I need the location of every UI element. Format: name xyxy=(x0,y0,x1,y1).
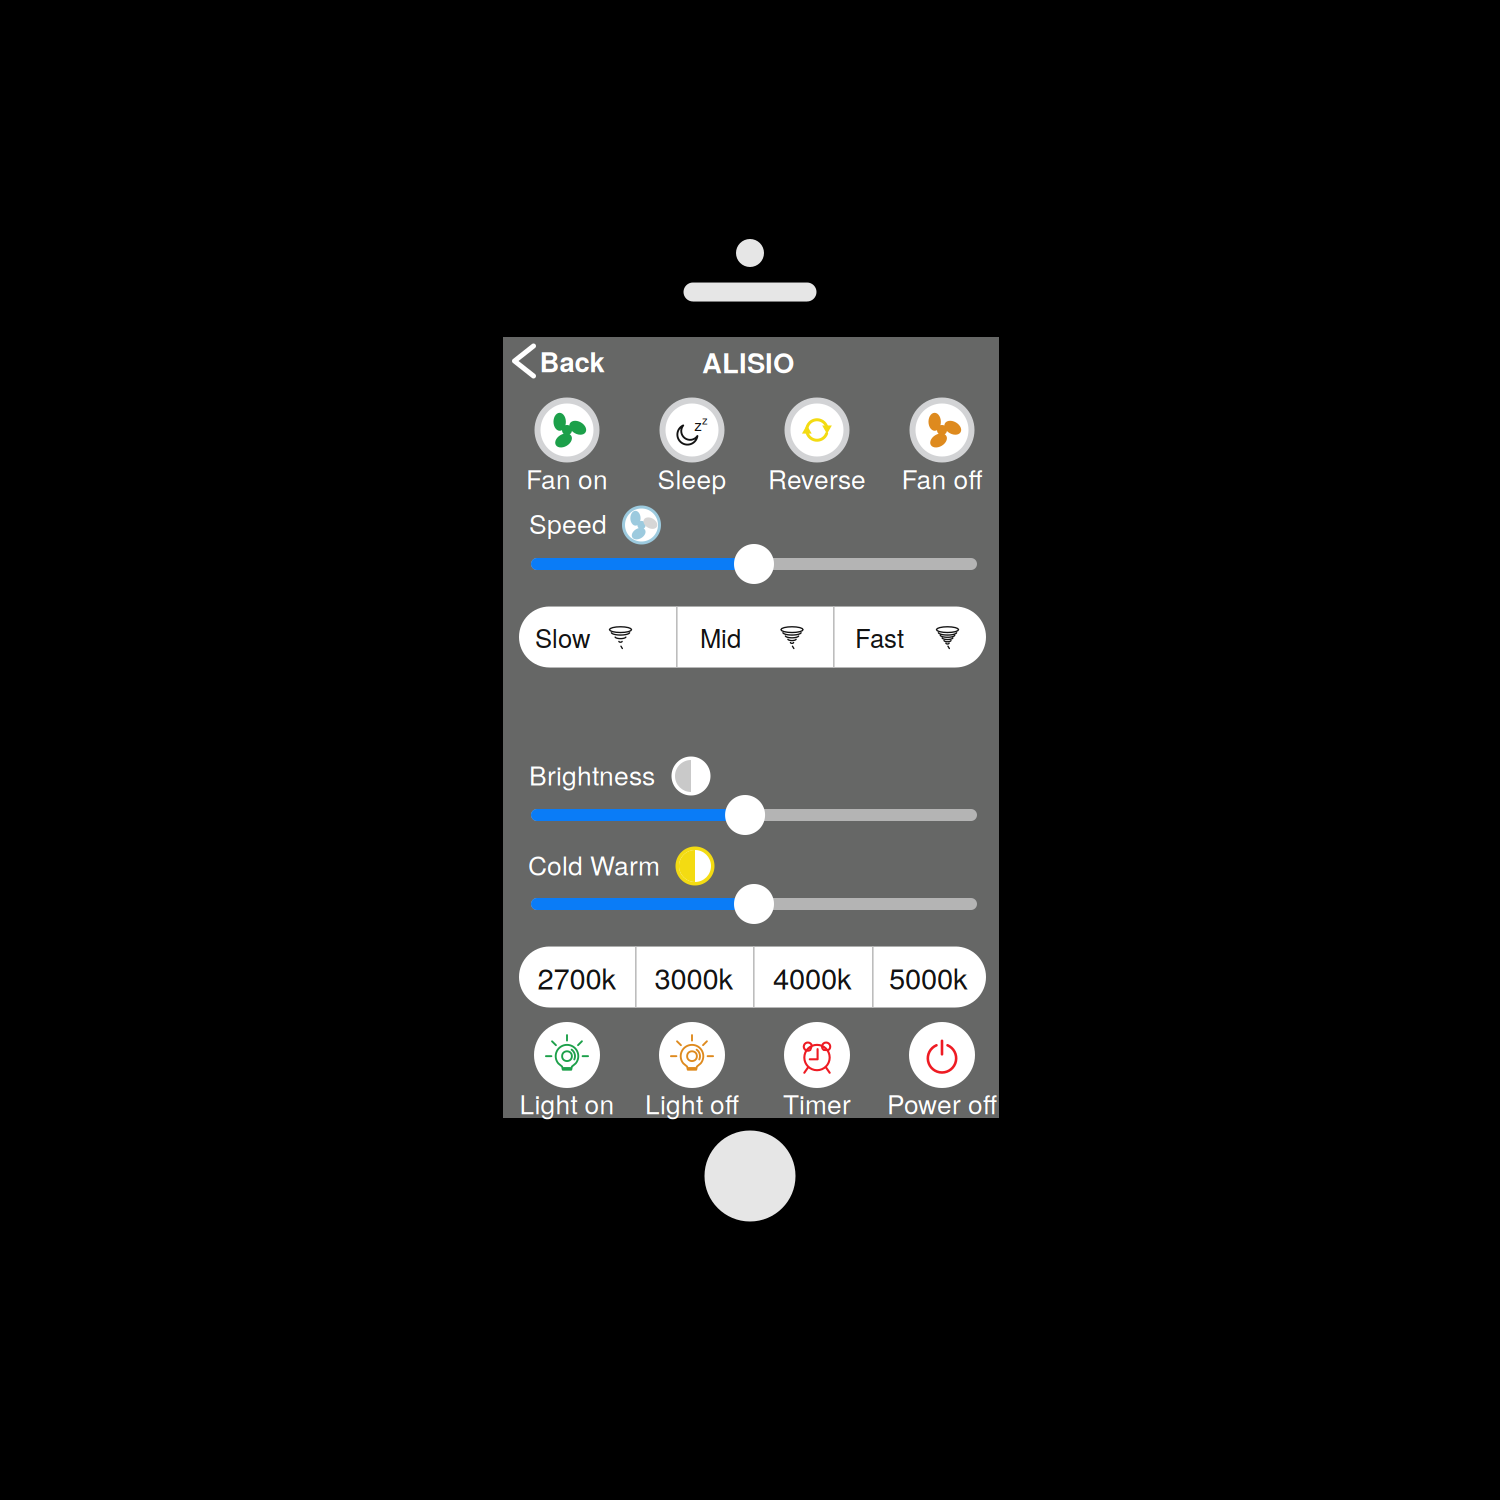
staticText: z xyxy=(702,411,708,428)
staticText: Brightness xyxy=(529,755,655,793)
button[interactable]: Back xyxy=(511,341,604,381)
staticText: Slow xyxy=(535,619,590,655)
staticText: 4000k xyxy=(773,956,852,998)
staticText: Light off xyxy=(645,1084,739,1122)
staticText: Fan on xyxy=(526,459,608,497)
button[interactable]: Timer xyxy=(737,1022,897,1118)
button[interactable]: Light off xyxy=(612,1022,772,1118)
staticText: Reverse xyxy=(768,459,866,497)
button[interactable]: Fan on xyxy=(487,397,647,493)
button[interactable]: Mid xyxy=(676,606,833,667)
button[interactable]: Fast xyxy=(833,606,985,667)
staticText: 2700k xyxy=(537,956,616,998)
button[interactable]: Power off xyxy=(862,1022,1022,1118)
button[interactable]: Light on xyxy=(487,1022,647,1118)
staticText: Speed xyxy=(529,504,607,541)
staticText: ALISIO xyxy=(702,342,794,382)
staticText: Mid xyxy=(700,619,741,655)
staticText: Power off xyxy=(887,1084,997,1122)
button[interactable]: 4000k xyxy=(753,946,872,1007)
button[interactable]: 2700k xyxy=(519,946,635,1007)
button[interactable]: Reverse xyxy=(737,397,897,493)
staticText: Light on xyxy=(519,1084,614,1122)
button[interactable]: Fan off xyxy=(862,397,1022,493)
staticText: Timer xyxy=(783,1084,851,1122)
button[interactable]: 3000k xyxy=(635,946,753,1007)
staticText: Fast xyxy=(855,619,904,655)
staticText: Cold Warm xyxy=(528,845,660,883)
staticText: Back xyxy=(539,341,604,381)
staticText: Fan off xyxy=(901,459,982,497)
staticText: z xyxy=(694,413,702,435)
staticText: 3000k xyxy=(654,956,733,998)
staticText: Sleep xyxy=(657,459,726,497)
button[interactable]: z xyxy=(612,397,772,493)
button[interactable]: Slow xyxy=(520,606,676,667)
staticText: 5000k xyxy=(889,956,968,998)
button[interactable]: 5000k xyxy=(872,946,985,1007)
